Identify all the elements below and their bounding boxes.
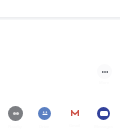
button[interactable]: Nearby Share [2, 106, 28, 129]
button[interactable]: Messages [90, 106, 116, 129]
button[interactable]: More options [91, 64, 117, 85]
button[interactable]: Gmail [61, 105, 87, 128]
button[interactable]: Save to Drive [31, 106, 57, 129]
